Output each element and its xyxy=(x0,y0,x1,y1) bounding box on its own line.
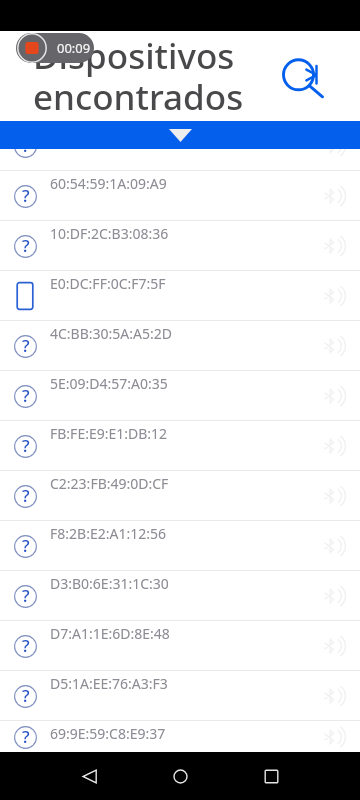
staticText: ? xyxy=(22,234,30,257)
staticText: ? xyxy=(22,634,30,657)
staticText: FB:FE:E9:E1:DB:12 xyxy=(50,424,168,443)
button[interactable]: ? xyxy=(0,121,360,170)
staticText: ? xyxy=(22,134,30,157)
button[interactable]: ? xyxy=(0,471,360,520)
button[interactable]: E0:DC:FF:0C:F7:5F xyxy=(0,271,360,320)
button[interactable]: ? xyxy=(0,621,360,670)
staticText: ? xyxy=(22,384,30,407)
staticText: 5E:09:D4:57:A0:35 xyxy=(50,374,168,393)
staticText: ? xyxy=(22,334,30,357)
button[interactable]: ? xyxy=(0,371,360,420)
staticText: Dispositivos encontrados xyxy=(33,32,244,120)
staticText: 60:54:59:1A:09:A9 xyxy=(50,174,167,193)
button[interactable]: Inicio xyxy=(153,752,208,800)
staticText: 4C:BB:30:5A:A5:2D xyxy=(50,324,172,343)
button[interactable]: ? xyxy=(0,221,360,270)
staticText: ? xyxy=(22,484,30,507)
staticText: D3:B0:6E:31:1C:30 xyxy=(50,574,169,593)
staticText: 10:DF:2C:B3:08:36 xyxy=(50,224,169,243)
staticText: ? xyxy=(22,725,30,748)
staticText: ? xyxy=(22,534,30,557)
button[interactable]: ? xyxy=(0,721,360,752)
button[interactable]: ? xyxy=(0,321,360,370)
button[interactable]: ? xyxy=(0,421,360,470)
button[interactable]: ? xyxy=(0,171,360,220)
button[interactable]: Buscar de nuevo xyxy=(276,48,332,104)
staticText: ? xyxy=(22,434,30,457)
staticText: E0:DC:FF:0C:F7:5F xyxy=(50,274,166,293)
staticText: D5:1A:EE:76:A3:F3 xyxy=(50,674,168,693)
staticText: 00:09 xyxy=(57,39,91,57)
button[interactable]: Atrás xyxy=(62,752,117,800)
button[interactable]: Mostrar más xyxy=(0,121,360,149)
staticText: D7:A1:1E:6D:8E:48 xyxy=(50,624,170,643)
staticText: 69:9E:59:C8:E9:37 xyxy=(50,724,166,743)
staticText: C2:23:FB:49:0D:CF xyxy=(50,474,169,493)
button[interactable]: ? xyxy=(0,671,360,720)
button[interactable]: Grabando pantalla 00:09 xyxy=(16,33,94,63)
staticText: F8:2B:E2:A1:12:56 xyxy=(50,524,166,543)
staticText: ? xyxy=(22,584,30,607)
button[interactable]: ? xyxy=(0,571,360,620)
staticText: ? xyxy=(22,184,30,207)
staticText: ? xyxy=(22,684,30,707)
button[interactable]: ? xyxy=(0,521,360,570)
button[interactable]: Aplicaciones recientes xyxy=(244,752,299,800)
